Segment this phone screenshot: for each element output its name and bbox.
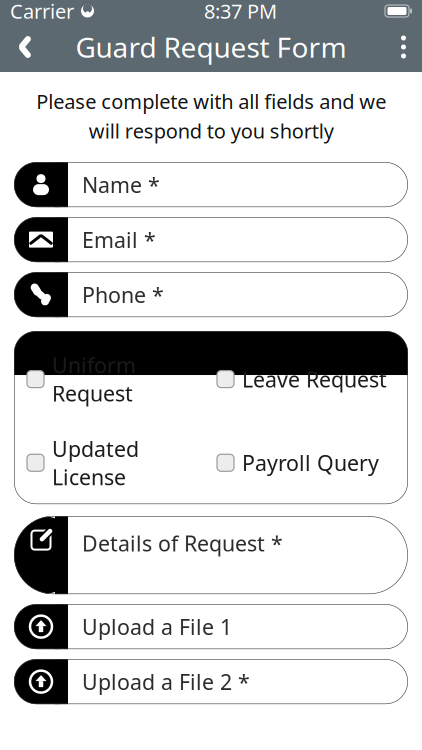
button[interactable]: Details of Request * — [14, 516, 408, 594]
staticText: Please complete with all fields and we w… — [36, 88, 386, 144]
staticText: Leave Request — [242, 365, 387, 393]
staticText: Upload a File 1 — [82, 612, 232, 641]
button[interactable]: Phone * — [14, 272, 408, 317]
button[interactable]: Back — [0, 22, 50, 72]
button[interactable]: Upload a File 2 * — [14, 659, 408, 704]
button[interactable]: Uniform Request — [27, 351, 217, 407]
staticText: Name * — [82, 170, 160, 199]
button[interactable]: Other — [217, 518, 395, 546]
staticText: Phone * — [82, 280, 164, 309]
button[interactable]: More options — [385, 22, 422, 72]
staticText: Details of Request * — [82, 529, 283, 557]
button[interactable]: Complaint — [27, 518, 217, 546]
staticText: 8:37 PM — [204, 0, 277, 24]
button[interactable]: Leave Request — [217, 365, 395, 393]
button[interactable]: Payroll Query — [217, 449, 395, 477]
staticText: Payroll Query — [242, 449, 379, 477]
button[interactable]: Name * — [14, 162, 408, 207]
staticText: Guard Request Form — [75, 28, 346, 66]
staticText: Complaint — [52, 518, 156, 546]
button[interactable]: Updated License — [27, 434, 217, 491]
button[interactable]: Email * — [14, 217, 408, 262]
staticText: Email * — [82, 225, 156, 254]
staticText: Updated License — [52, 434, 139, 491]
staticText: Upload a File 2 * — [82, 667, 250, 696]
staticText: Carrier — [10, 0, 74, 24]
staticText: Other — [242, 518, 301, 546]
staticText: Uniform Request — [52, 351, 136, 407]
button[interactable]: Upload a File 1 — [14, 604, 408, 649]
